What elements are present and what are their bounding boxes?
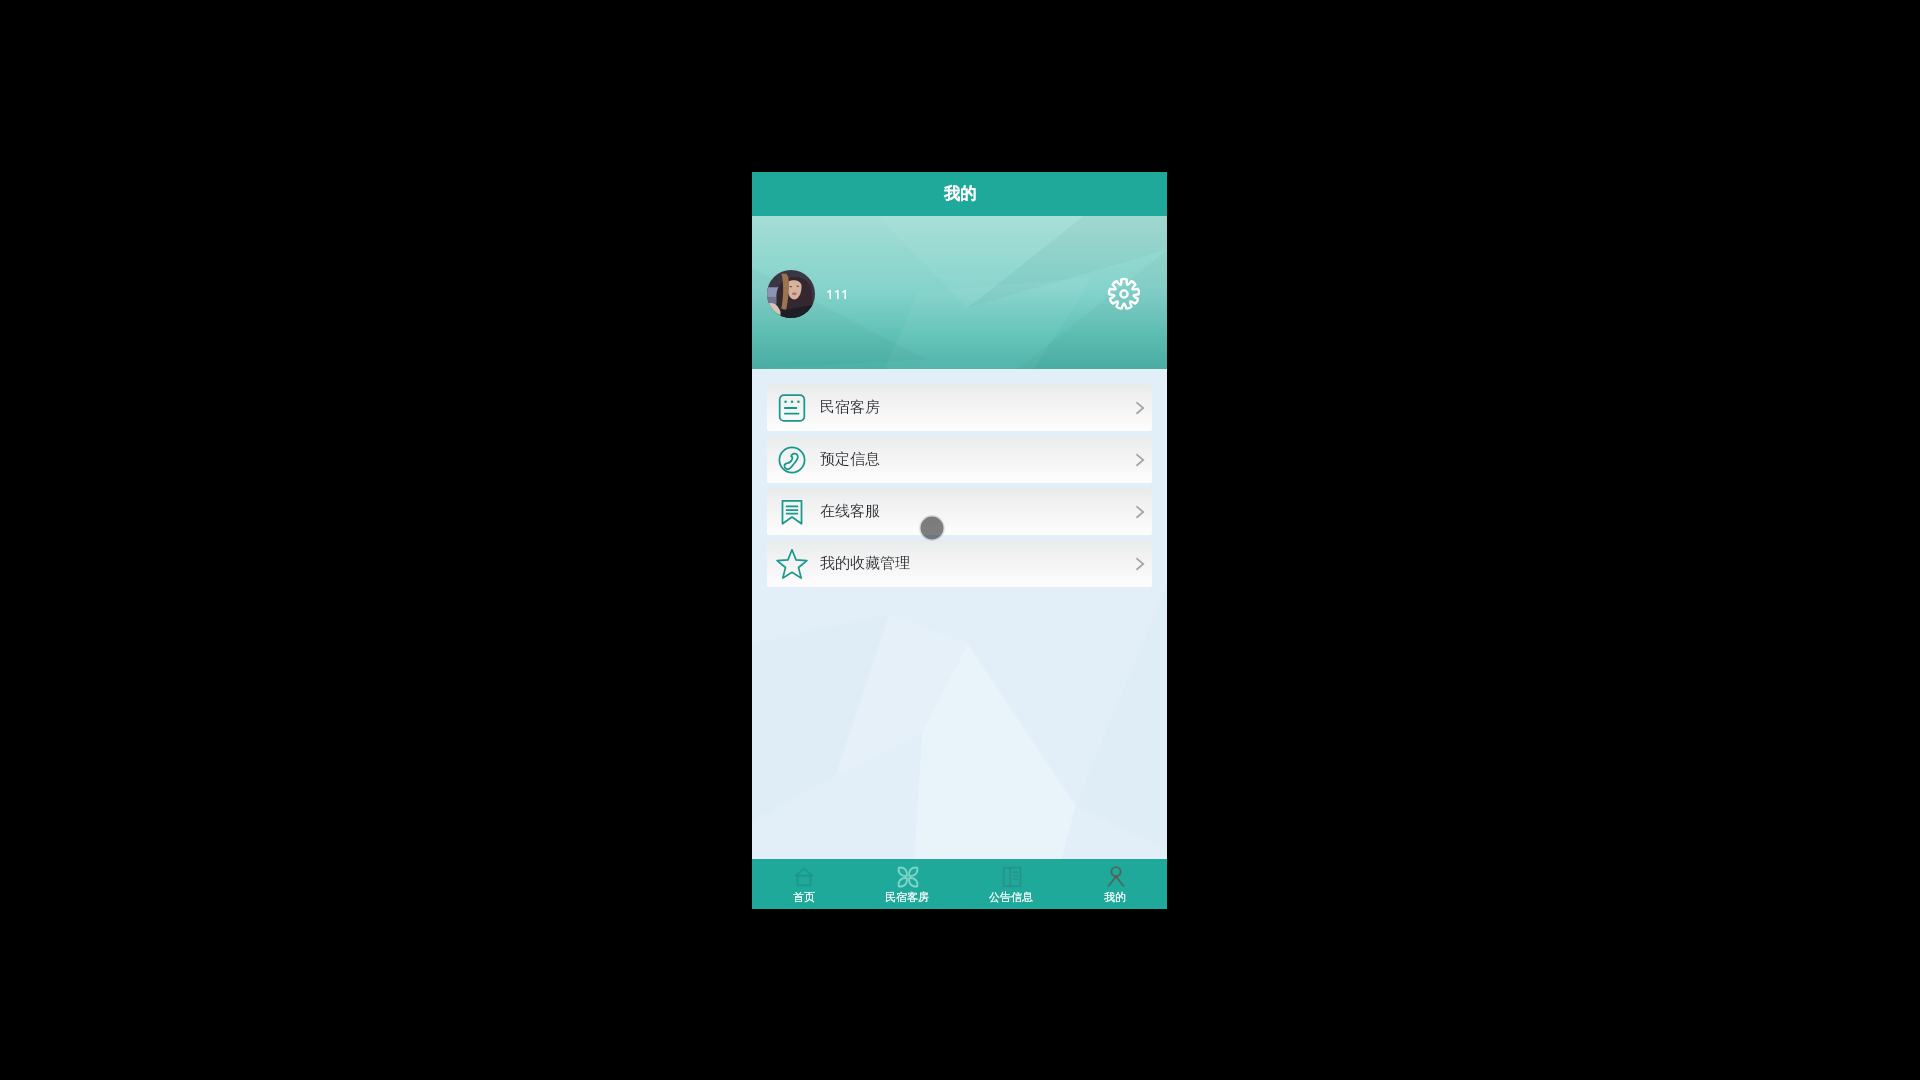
staticText: 在线客服	[820, 502, 880, 521]
staticText: 首页	[793, 890, 815, 904]
button[interactable]: Profile photo	[767, 270, 815, 318]
button[interactable]: 我的	[1063, 859, 1167, 909]
button[interactable]: Settings	[1104, 274, 1144, 314]
staticText: 预定信息	[820, 450, 880, 469]
button[interactable]: 预定信息	[767, 436, 1152, 483]
staticText: 111	[826, 285, 849, 303]
button[interactable]: 首页	[752, 859, 855, 909]
staticText: 民宿客房	[820, 398, 880, 417]
button[interactable]: 公告信息	[959, 859, 1063, 909]
staticText: 我的	[944, 184, 976, 204]
staticText: 公告信息	[989, 890, 1033, 904]
button[interactable]: 我的收藏管理	[767, 540, 1152, 587]
button[interactable]: 民宿客房	[855, 859, 959, 909]
staticText: 民宿客房	[885, 890, 929, 904]
staticText: 我的	[1104, 890, 1126, 904]
button[interactable]: 民宿客房	[767, 384, 1152, 431]
button[interactable]: 在线客服	[767, 488, 1152, 535]
staticText: 我的收藏管理	[820, 554, 910, 573]
